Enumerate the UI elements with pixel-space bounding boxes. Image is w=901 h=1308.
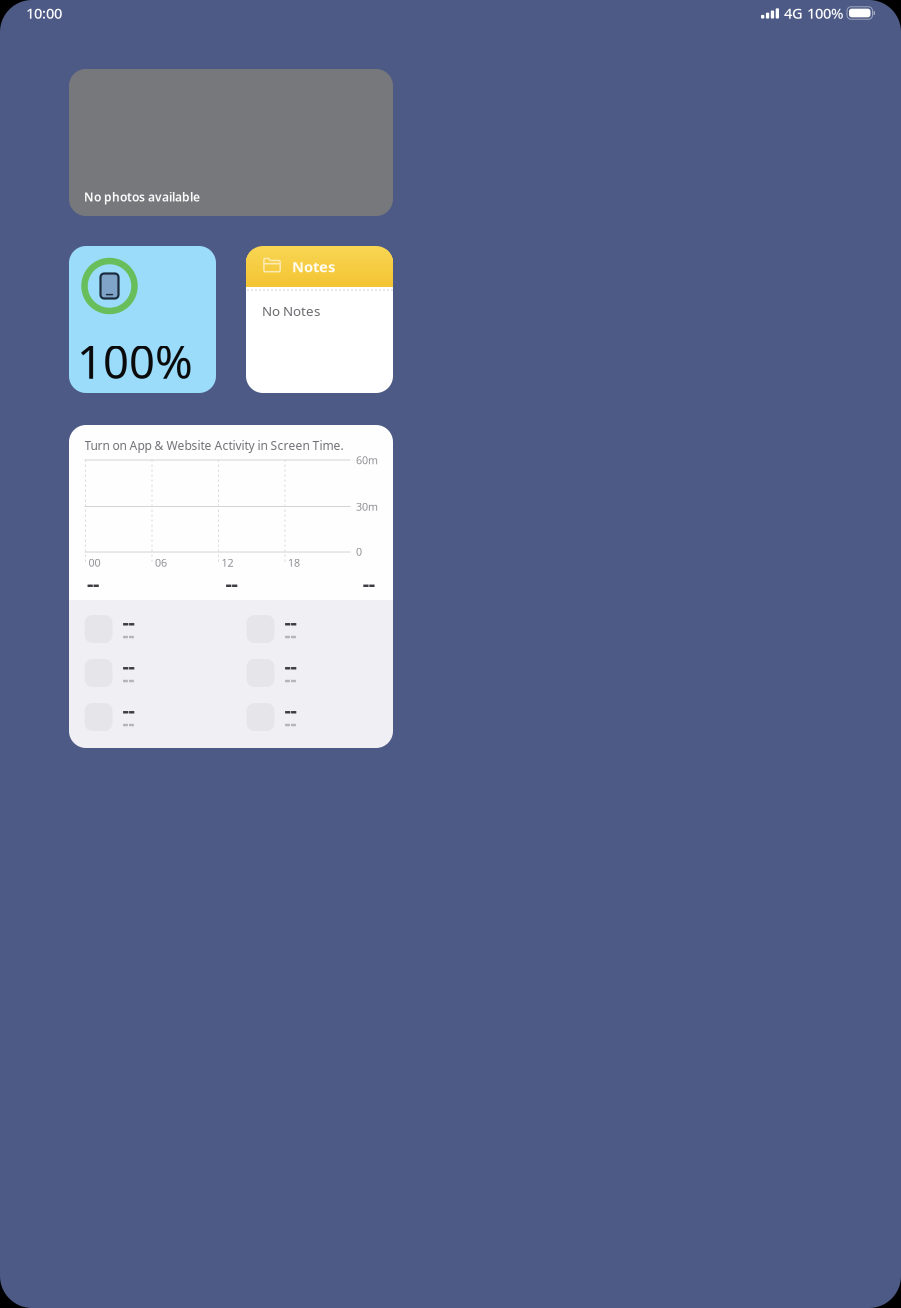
staticText: 100% — [77, 331, 193, 391]
staticText: -- — [122, 696, 134, 723]
staticText: No Notes — [262, 302, 320, 320]
staticText: -- — [122, 622, 134, 647]
staticText: 0 — [356, 544, 362, 559]
staticText: 4G 100% — [780, 3, 847, 23]
staticText: -- — [122, 710, 134, 735]
staticText: -- — [122, 652, 134, 679]
staticText: -- — [284, 666, 296, 691]
staticText: -- — [284, 710, 296, 735]
button[interactable]: No photos available — [69, 69, 393, 216]
staticText: Turn on App & Website Activity in Screen… — [84, 437, 343, 453]
staticText: 00 — [88, 555, 100, 570]
staticText: 60m — [356, 453, 378, 467]
button[interactable]: Turn on App & Website Activity in Screen… — [69, 425, 393, 748]
staticText: -- — [122, 608, 134, 635]
staticText: -- — [363, 570, 375, 597]
staticText: Notes — [292, 257, 335, 276]
staticText: -- — [284, 622, 296, 647]
button[interactable]: 100% — [69, 246, 216, 393]
staticText: -- — [225, 570, 237, 597]
staticText: -- — [122, 666, 134, 691]
staticText: 12 — [221, 555, 233, 570]
staticText: -- — [284, 608, 296, 635]
staticText: 18 — [288, 555, 300, 570]
staticText: 30m — [356, 499, 378, 514]
staticText: -- — [87, 570, 99, 597]
staticText: -- — [284, 696, 296, 723]
staticText: No photos available — [84, 189, 200, 205]
staticText: 10:00 — [26, 3, 62, 23]
button[interactable]: Notes — [246, 246, 393, 393]
staticText: -- — [284, 652, 296, 679]
staticText: 06 — [155, 555, 167, 570]
